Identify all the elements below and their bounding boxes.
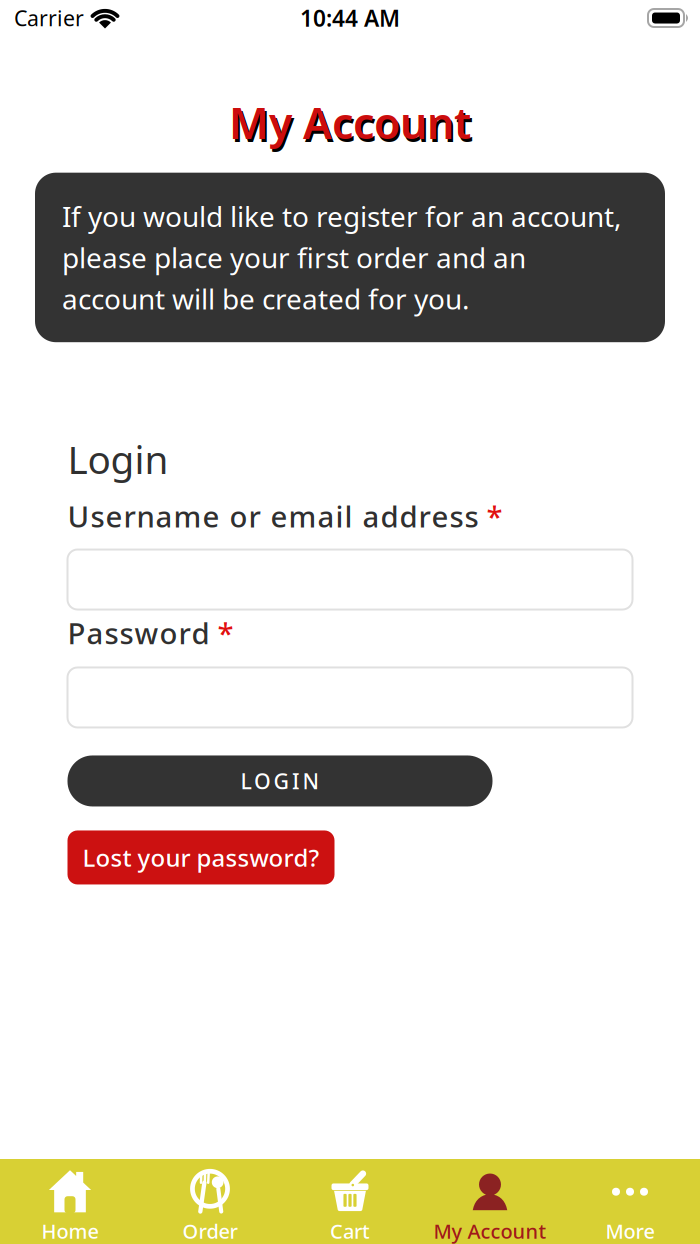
button[interactable]: More — [560, 1159, 700, 1244]
button[interactable]: Lost your password? — [67, 830, 334, 884]
staticText: If you would like to register for an acc… — [62, 198, 622, 317]
staticText: Username or email address — [67, 497, 478, 536]
staticText: LOGIN — [240, 767, 319, 795]
staticText: * — [217, 613, 233, 652]
staticText: More — [605, 1218, 654, 1244]
staticText: My Account — [229, 94, 471, 151]
staticText: Login — [67, 433, 168, 484]
staticText: * — [486, 497, 502, 536]
staticText: Password — [67, 613, 209, 652]
button[interactable]: Username or email address — [67, 549, 632, 609]
button[interactable]: Home — [0, 1159, 140, 1244]
staticText: Order — [182, 1218, 237, 1244]
button[interactable]: LOGIN — [67, 755, 492, 806]
staticText: My Account — [231, 97, 473, 154]
staticText: Carrier — [14, 4, 84, 32]
button[interactable]: Order — [140, 1159, 280, 1244]
button[interactable]: Password — [67, 667, 632, 727]
staticText: 10:44 AM — [300, 3, 400, 33]
staticText: Lost your password? — [82, 841, 319, 873]
button[interactable]: Cart — [280, 1159, 420, 1244]
staticText: Home — [41, 1218, 98, 1244]
staticText: My Account — [433, 1218, 546, 1244]
staticText: Cart — [330, 1218, 370, 1244]
button[interactable]: My Account — [420, 1159, 560, 1244]
